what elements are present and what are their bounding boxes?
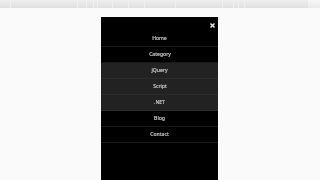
button[interactable]: Home: [101, 31, 218, 47]
button[interactable]: Category: [101, 47, 218, 63]
staticText: Blog: [154, 115, 165, 122]
button[interactable]: Blog: [101, 111, 218, 127]
staticText: Contact: [150, 131, 169, 138]
staticText: Script: [153, 83, 167, 90]
staticText: jQuery: [151, 67, 168, 74]
button[interactable]: Contact: [101, 127, 218, 143]
button[interactable]: .NET: [101, 95, 218, 111]
button[interactable]: jQuery: [101, 63, 218, 79]
staticText: Home: [152, 35, 167, 42]
button[interactable]: Script: [101, 79, 218, 95]
staticText: Category: [149, 51, 171, 58]
button[interactable]: Close menu: [208, 21, 217, 30]
staticText: .NET: [154, 99, 165, 106]
